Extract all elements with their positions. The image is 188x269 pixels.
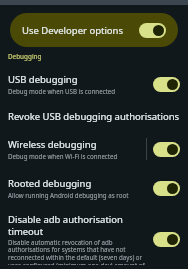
staticText: Debug mode when USB is connected xyxy=(8,87,116,95)
button[interactable]: Use Developer options xyxy=(139,23,166,38)
button[interactable]: Rooted debugging xyxy=(0,171,188,205)
staticText: Use Developer options xyxy=(22,24,139,37)
staticText: Allow running Android debugging as root xyxy=(8,191,129,199)
button[interactable]: USB debugging xyxy=(0,67,188,101)
staticText: USB debugging xyxy=(8,73,78,86)
button[interactable]: USB debugging xyxy=(153,77,180,92)
staticText: Rooted debugging xyxy=(8,177,92,190)
staticText: Wireless debugging xyxy=(8,138,97,151)
button[interactable]: Revoke USB debugging authorisations xyxy=(0,106,188,127)
button[interactable]: Disable adb authorisation timeout xyxy=(153,232,180,247)
staticText: Debugging xyxy=(8,52,42,61)
staticText: Revoke USB debugging authorisations xyxy=(8,110,180,123)
staticText: Disable adb authorisation timeout xyxy=(8,213,147,237)
button[interactable]: Wireless debugging xyxy=(0,132,188,166)
staticText: Debug mode when Wi-Fi is connected xyxy=(8,152,118,160)
button[interactable]: Disable adb authorisation timeout xyxy=(0,211,188,269)
button[interactable]: Rooted debugging xyxy=(153,181,180,196)
staticText: Disable automatic revocation of adb auth… xyxy=(8,238,147,265)
button[interactable]: Use Developer options xyxy=(10,13,178,47)
button[interactable]: Wireless debugging xyxy=(153,142,180,157)
